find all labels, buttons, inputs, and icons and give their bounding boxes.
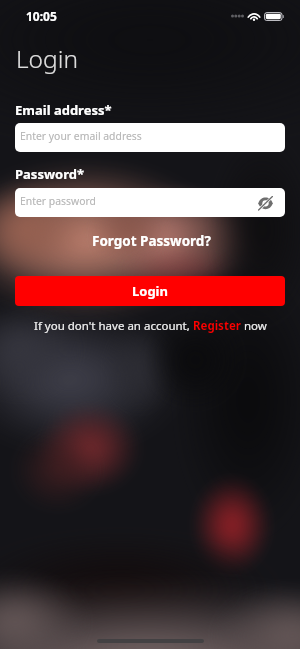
button[interactable]: Enter password <box>15 188 285 217</box>
staticText: Password* <box>15 165 84 183</box>
button[interactable]: Login <box>15 276 285 306</box>
button[interactable]: Forgot Password? <box>82 228 221 254</box>
button[interactable]: Enter your email address <box>15 123 285 152</box>
staticText: Login <box>16 42 79 75</box>
button[interactable]: Show password <box>255 193 275 213</box>
staticText: Forgot Password? <box>92 232 211 250</box>
staticText: now <box>241 318 267 334</box>
button[interactable]: Register <box>193 318 241 334</box>
staticText: Enter password <box>20 194 96 208</box>
staticText: Register <box>193 318 241 334</box>
staticText: Login <box>132 282 168 300</box>
staticText: Email address* <box>15 101 112 119</box>
staticText: If you don't have an account, <box>34 318 193 334</box>
staticText: Enter your email address <box>20 129 142 143</box>
staticText: 10:05 <box>26 8 57 24</box>
